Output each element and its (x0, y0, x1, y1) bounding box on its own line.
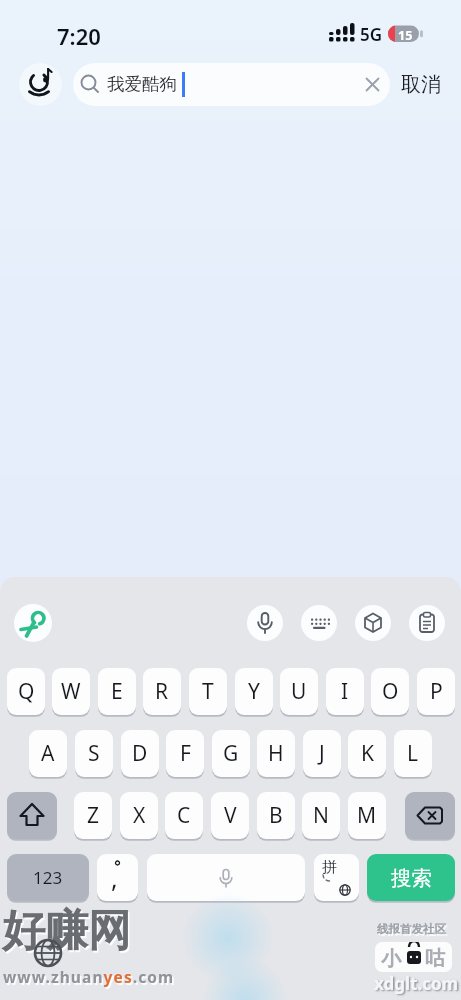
staticText: B (269, 801, 283, 830)
button[interactable] (14, 604, 52, 642)
button[interactable]: Y (235, 668, 273, 715)
button[interactable] (301, 605, 337, 641)
staticText: V (224, 801, 237, 830)
button[interactable]: 我爱酷狗 (73, 63, 390, 106)
button[interactable]: Z (74, 792, 112, 839)
staticText: Z (87, 801, 100, 830)
staticText: 小 (381, 946, 401, 971)
button[interactable] (409, 605, 445, 641)
staticText: 7:20 (57, 21, 101, 51)
staticText: 取消 (401, 72, 441, 97)
staticText: , (111, 861, 118, 895)
staticText: 线报首发社区 (377, 922, 446, 936)
button[interactable] (247, 605, 283, 641)
staticText: P (430, 677, 443, 706)
staticText: R (155, 677, 169, 706)
staticText: X (133, 801, 146, 830)
button[interactable]: G (212, 730, 250, 777)
staticText: 123 (33, 866, 63, 889)
button[interactable]: L (394, 730, 432, 777)
staticText: www.zhuanyes.com (3, 966, 175, 987)
button[interactable]: A (29, 730, 67, 777)
button[interactable]: 123 (7, 854, 89, 901)
staticText: Y (248, 677, 260, 706)
button[interactable]: I (326, 668, 364, 715)
button[interactable]: B (257, 792, 295, 839)
button[interactable] (147, 854, 305, 901)
staticText: C (177, 801, 191, 830)
button[interactable]: D (121, 730, 159, 777)
staticText: U (291, 677, 307, 706)
button[interactable]: J (303, 730, 341, 777)
button[interactable]: X (120, 792, 158, 839)
button[interactable]: S (75, 730, 113, 777)
staticText: 咕 (425, 946, 445, 971)
staticText: 搜索 (391, 865, 432, 891)
button[interactable]: K (348, 730, 386, 777)
button[interactable]: H (257, 730, 295, 777)
staticText: E (111, 677, 123, 706)
staticText: 好赚网 (2, 904, 131, 958)
staticText: Q (18, 677, 35, 706)
staticText: F (180, 739, 191, 768)
button[interactable]: P (417, 668, 455, 715)
staticText: 15 (398, 27, 413, 44)
button[interactable]: U (280, 668, 318, 715)
staticText: 我爱酷狗 (107, 73, 177, 95)
button[interactable]: Q (7, 668, 45, 715)
button[interactable]: O (371, 668, 409, 715)
button[interactable]: C (165, 792, 203, 839)
staticText: O (382, 677, 399, 706)
button[interactable]: N (302, 792, 340, 839)
button[interactable]: T (189, 668, 227, 715)
staticText: D (132, 739, 148, 768)
button[interactable]: W (52, 668, 90, 715)
staticText: H (268, 739, 284, 768)
button[interactable]: F (166, 730, 204, 777)
staticText: 5G (360, 23, 383, 46)
button[interactable]: 拼 (314, 854, 359, 901)
staticText: xdglt.com (374, 972, 459, 995)
staticText: S (88, 739, 100, 768)
staticText: N (313, 801, 329, 830)
staticText: J (319, 739, 325, 768)
staticText: A (41, 739, 55, 768)
staticText: K (361, 739, 374, 768)
staticText: W (61, 677, 81, 706)
staticText: L (407, 739, 419, 768)
button[interactable]: , (97, 854, 138, 901)
staticText: M (357, 801, 377, 830)
button[interactable]: 搜索 (367, 854, 455, 901)
button[interactable] (7, 792, 57, 839)
staticText: G (223, 739, 239, 768)
button[interactable]: 取消 (401, 68, 453, 100)
button[interactable] (19, 63, 62, 106)
button[interactable] (355, 605, 391, 641)
button[interactable]: R (143, 668, 181, 715)
button[interactable] (405, 792, 455, 839)
staticText: T (202, 677, 214, 706)
button[interactable]: M (348, 792, 386, 839)
button[interactable]: V (211, 792, 249, 839)
staticText: 拼 (322, 858, 337, 877)
button[interactable]: E (98, 668, 136, 715)
staticText: I (341, 677, 349, 706)
